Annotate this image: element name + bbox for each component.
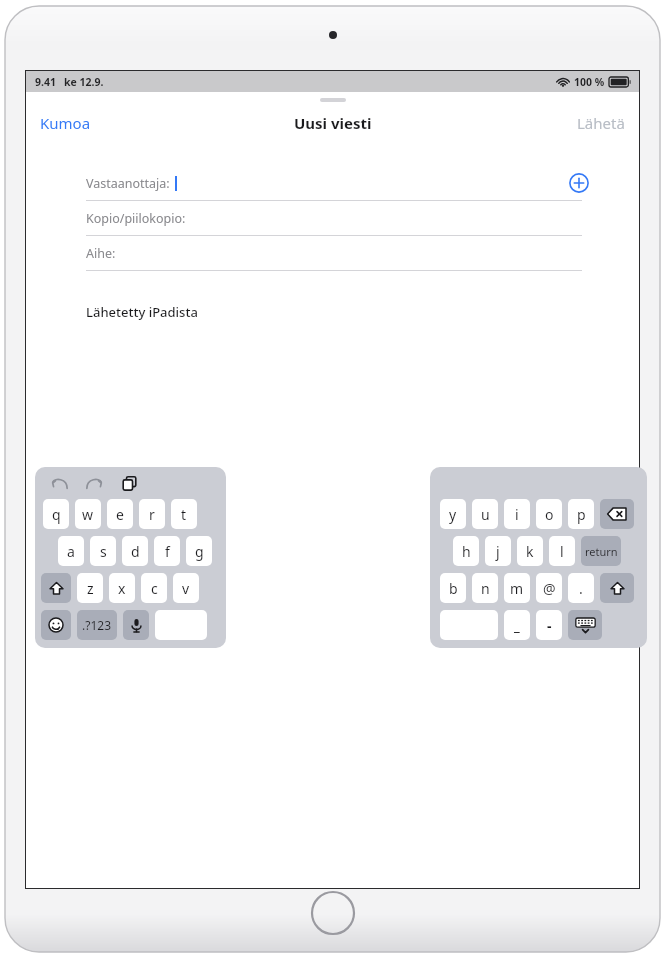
button[interactable]: c <box>141 573 167 603</box>
button[interactable]: x <box>109 573 135 603</box>
button[interactable]: Add contact <box>566 170 592 196</box>
button[interactable]: f <box>154 536 180 566</box>
button[interactable]: r <box>139 499 165 529</box>
other: Home <box>310 890 356 936</box>
staticText: b <box>449 579 458 598</box>
button[interactable]: s <box>90 536 116 566</box>
staticText: q <box>52 505 61 524</box>
staticText: _ <box>514 616 520 635</box>
button[interactable]: q <box>43 499 69 529</box>
button[interactable]: y <box>440 499 466 529</box>
staticText: u <box>481 505 490 524</box>
staticText: s <box>100 542 107 561</box>
button[interactable]: Kumoa <box>26 107 105 139</box>
button[interactable]: i <box>504 499 530 529</box>
button[interactable]: Redo <box>80 473 108 493</box>
button[interactable]: m <box>504 573 530 603</box>
staticText: m <box>510 579 524 598</box>
button[interactable]: Lähetä <box>563 107 639 139</box>
button[interactable]: w <box>75 499 101 529</box>
staticText: r <box>149 505 155 524</box>
button[interactable]: h <box>453 536 479 566</box>
staticText: a <box>67 542 75 561</box>
staticText: f <box>165 542 170 561</box>
staticText: l <box>560 542 564 561</box>
staticText: Lähetä <box>577 113 625 133</box>
button[interactable]: a <box>58 536 84 566</box>
button[interactable]: Paste <box>115 473 143 493</box>
staticText: Kumoa <box>40 113 91 133</box>
button[interactable]: j <box>485 536 511 566</box>
staticText: Uusi viesti <box>294 113 372 133</box>
staticText: return <box>585 544 618 559</box>
staticText: Kopio/piilokopio: <box>86 210 186 227</box>
staticText: x <box>118 579 126 598</box>
button[interactable]: - <box>536 610 562 640</box>
staticText: .?123 <box>82 617 112 633</box>
button[interactable]: Space <box>440 610 498 640</box>
button[interactable]: t <box>171 499 197 529</box>
button[interactable]: Undo <box>45 473 73 493</box>
button[interactable]: b <box>440 573 466 603</box>
button[interactable]: Space <box>155 610 207 640</box>
button[interactable]: Shift <box>600 573 634 603</box>
staticText: o <box>545 505 554 524</box>
button[interactable]: u <box>472 499 498 529</box>
button[interactable]: .?123 <box>77 610 117 640</box>
button[interactable]: v <box>173 573 199 603</box>
staticText: i <box>515 505 519 524</box>
staticText: h <box>462 542 471 561</box>
staticText: 9.41 <box>35 75 56 89</box>
staticText: Vastaanottaja: <box>86 175 170 192</box>
staticText: Aihe: <box>86 245 116 262</box>
staticText: p <box>577 505 586 524</box>
button[interactable]: e <box>107 499 133 529</box>
staticText: ke 12.9. <box>64 75 104 89</box>
staticText: t <box>181 505 187 524</box>
staticText: c <box>151 579 158 598</box>
button[interactable]: z <box>77 573 103 603</box>
button[interactable]: Kopio/piilokopio: <box>86 201 582 236</box>
button[interactable]: Backspace <box>600 499 634 529</box>
button[interactable]: return <box>581 536 621 566</box>
staticText: d <box>131 542 140 561</box>
button[interactable]: Aihe: <box>86 236 582 271</box>
staticText: Lähetetty iPadista <box>86 303 198 321</box>
button[interactable]: @ <box>536 573 562 603</box>
button[interactable]: p <box>568 499 594 529</box>
button[interactable]: n <box>472 573 498 603</box>
button[interactable]: Hide keyboard <box>568 610 602 640</box>
button[interactable]: Emoji <box>41 610 71 640</box>
button[interactable]: l <box>549 536 575 566</box>
staticText: e <box>116 505 124 524</box>
button[interactable]: d <box>122 536 148 566</box>
staticText: @ <box>543 579 556 598</box>
button[interactable]: _ <box>504 610 530 640</box>
staticText: j <box>496 542 500 561</box>
staticText: z <box>87 579 94 598</box>
staticText: v <box>182 579 190 598</box>
staticText: y <box>449 505 457 524</box>
button[interactable]: Vastaanottaja: <box>86 166 582 201</box>
staticText: k <box>526 542 534 561</box>
button[interactable]: g <box>186 536 212 566</box>
button[interactable]: o <box>536 499 562 529</box>
button[interactable]: Shift <box>41 573 71 603</box>
staticText: - <box>547 616 552 635</box>
button[interactable]: k <box>517 536 543 566</box>
button[interactable]: Dictation <box>123 610 149 640</box>
staticText: . <box>579 579 583 598</box>
staticText: w <box>82 505 94 524</box>
button[interactable]: . <box>568 573 594 603</box>
staticText: g <box>195 542 204 561</box>
staticText: 100 % <box>574 75 605 89</box>
staticText: n <box>481 579 490 598</box>
